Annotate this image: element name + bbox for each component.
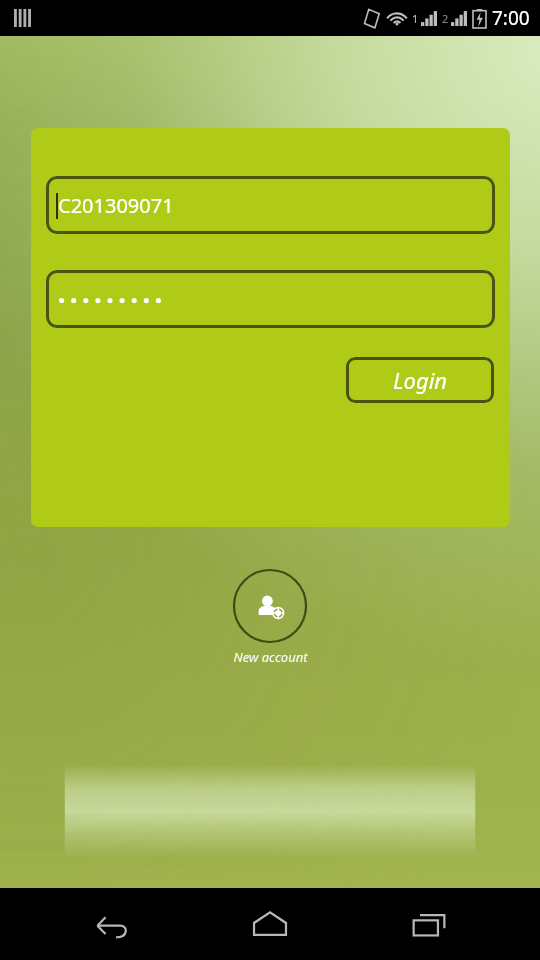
staticText: 1	[412, 11, 419, 26]
staticText: 2	[442, 11, 449, 26]
button[interactable]: New account	[232, 568, 308, 644]
staticText: Login	[393, 365, 448, 395]
button[interactable]: Recent apps	[381, 888, 477, 960]
staticText: 7:00	[492, 5, 530, 31]
button[interactable]	[46, 270, 495, 328]
button[interactable]: Back	[63, 888, 159, 960]
staticText: New account	[233, 648, 308, 666]
button[interactable]: C201309071	[46, 176, 495, 234]
button[interactable]: Login	[346, 357, 494, 403]
staticText: C201309071	[58, 192, 174, 219]
button[interactable]: Home	[222, 888, 318, 960]
